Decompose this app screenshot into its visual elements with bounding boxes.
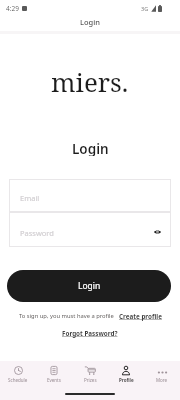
staticText: 4:29 [6, 4, 19, 13]
button[interactable]: Login [80, 17, 100, 27]
staticText: Events [47, 377, 61, 383]
button[interactable]: Show password [151, 226, 163, 238]
staticText: To sign up, you must have a profile [19, 312, 114, 320]
staticText: Profile [119, 377, 134, 383]
staticText: Forgot Password? [62, 329, 118, 338]
button[interactable]: Events [36, 361, 72, 388]
button[interactable]: More [144, 361, 180, 388]
button[interactable]: Prizes [72, 361, 108, 388]
button[interactable]: Create profile [119, 312, 162, 321]
button[interactable]: Profile [108, 361, 144, 388]
button[interactable]: Login [7, 270, 171, 302]
staticText: Login [72, 140, 109, 156]
button[interactable]: Password [9, 212, 171, 247]
staticText: Password [20, 228, 54, 238]
staticText: Create profile [119, 312, 162, 321]
staticText: Email [20, 193, 40, 203]
button[interactable]: Email [9, 179, 171, 212]
staticText: Schedule [8, 377, 28, 383]
staticText: Prizes [84, 377, 97, 383]
button[interactable]: Schedule [0, 361, 36, 388]
staticText: Login [80, 17, 100, 27]
staticText: 3G [141, 5, 149, 12]
button[interactable]: Forgot Password? [62, 329, 118, 338]
staticText: miers. [51, 64, 129, 94]
staticText: More [156, 377, 168, 383]
staticText: Login [78, 280, 101, 292]
